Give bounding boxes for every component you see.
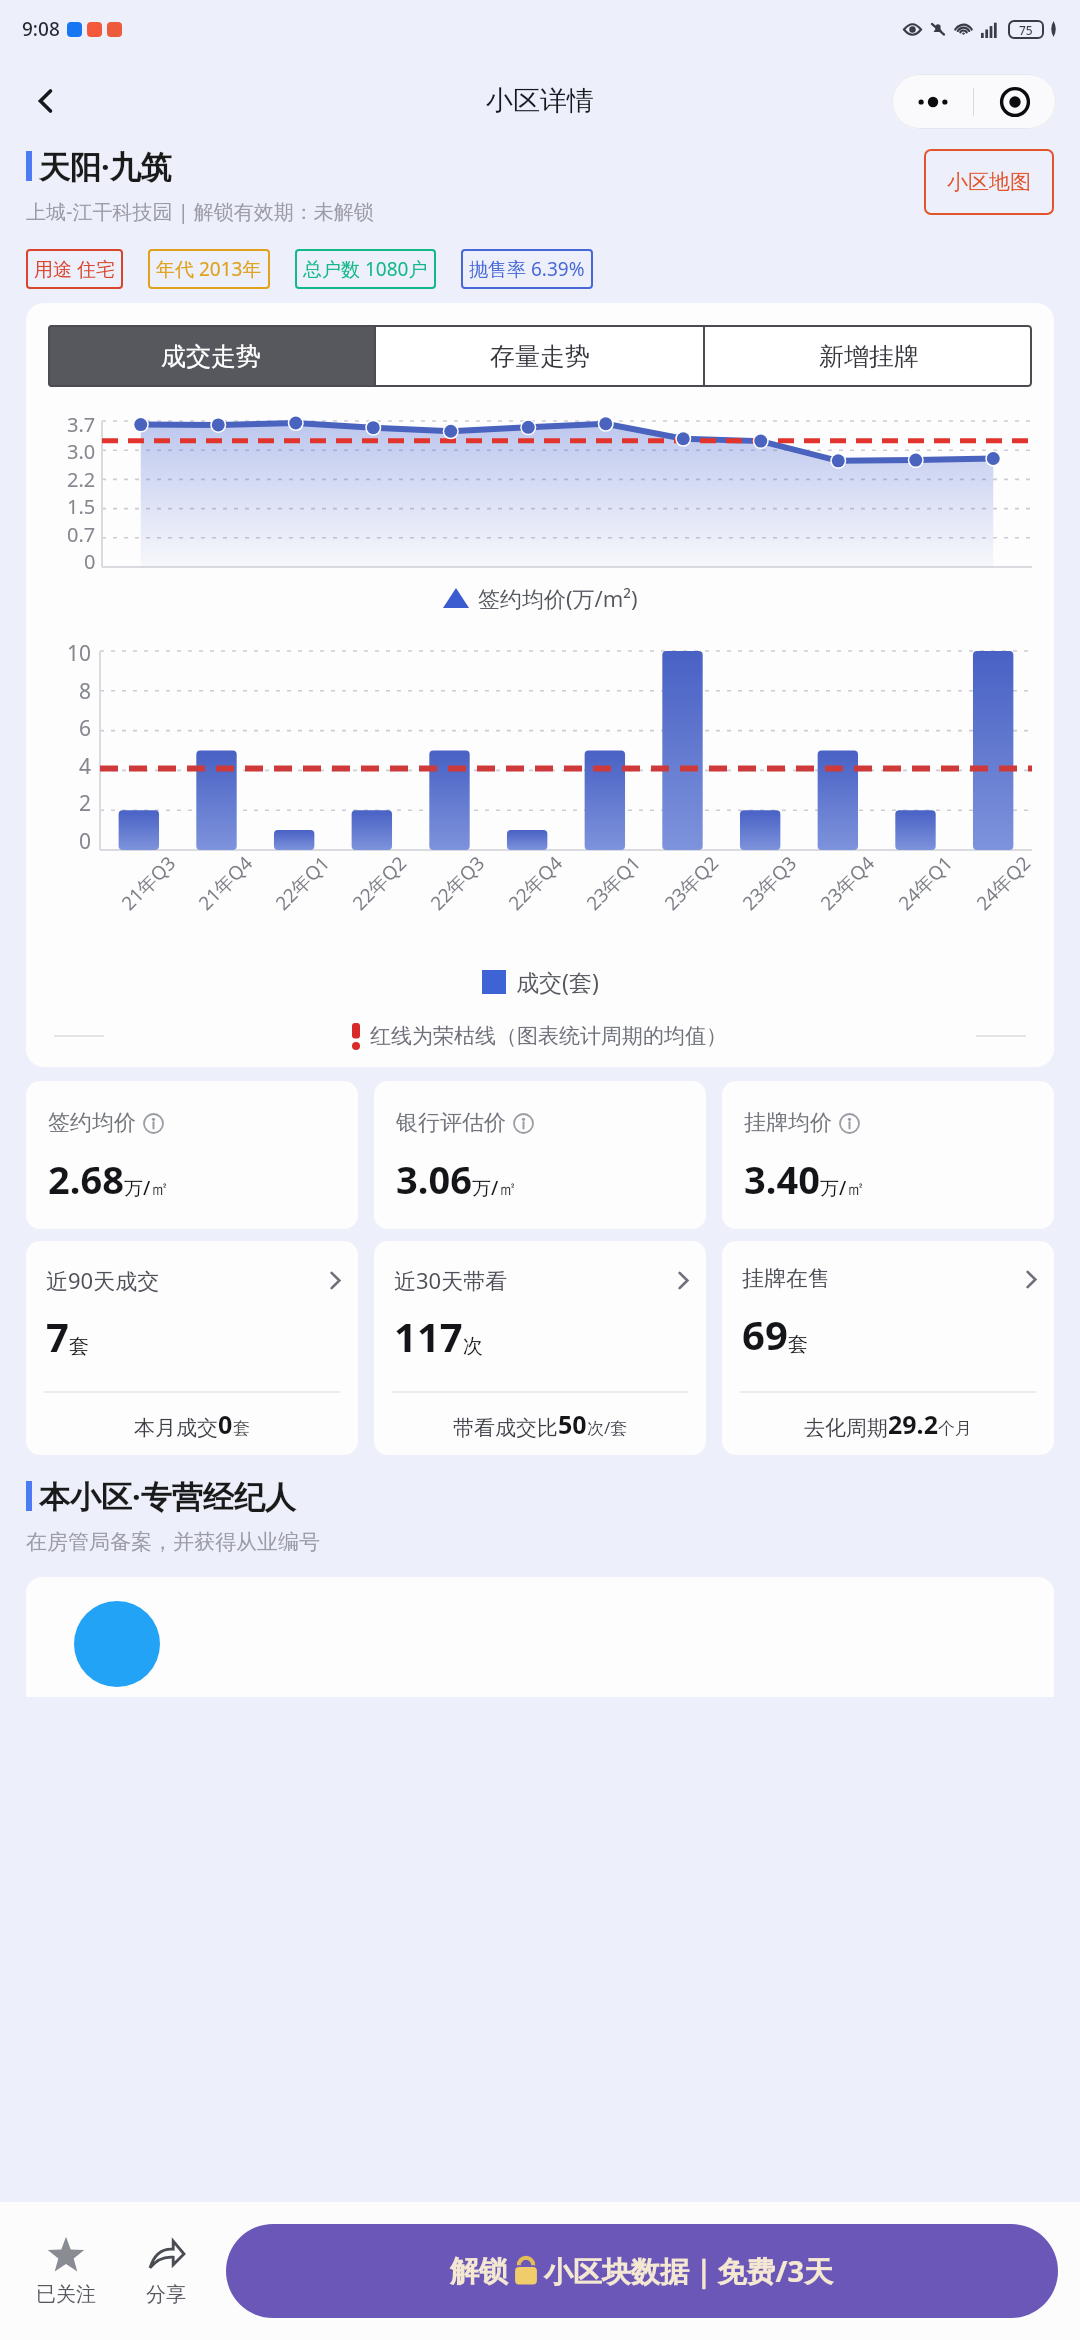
button[interactable]: 近30天带看 (374, 1241, 706, 1455)
staticText: 1.5 (67, 493, 96, 520)
staticText: 签约均价(万/m²) (478, 583, 638, 613)
staticText: 50 (558, 1407, 587, 1441)
button[interactable]: 小区地图 (924, 149, 1054, 215)
staticText: 银行评估价 (396, 1109, 506, 1137)
staticText: 挂牌在售 (742, 1265, 830, 1293)
button[interactable]: 用途 住宅 (34, 249, 115, 289)
staticText: 75 (1019, 22, 1033, 38)
staticText: 0.7 (67, 521, 96, 548)
button[interactable]: 新增挂牌 (705, 325, 1032, 387)
staticText: 9:08 (22, 16, 60, 42)
staticText: 总户数 1080户 (303, 256, 428, 282)
staticText: 去化周期 (804, 1415, 888, 1441)
staticText: 解锁 (450, 2253, 508, 2290)
staticText: 6 (79, 714, 92, 743)
button[interactable]: 抛售率 6.39% (469, 249, 585, 289)
staticText: 次/套 (587, 1416, 628, 1439)
staticText: 3.06 (396, 1153, 472, 1205)
staticText: 23年Q3 (736, 850, 802, 916)
staticText: 上城-江干科技园 | 解锁有效期：未解锁 (26, 198, 374, 225)
staticText: 套 (69, 1334, 89, 1359)
staticText: 分享 (146, 2282, 186, 2307)
staticText: 成交(套) (516, 966, 599, 997)
staticText: 个月 (938, 1418, 972, 1439)
staticText: 0 (84, 548, 96, 575)
staticText: 3.0 (67, 438, 96, 465)
staticText: 22年Q1 (269, 850, 335, 916)
button[interactable]: Close (974, 74, 1056, 129)
staticText: 在房管局备案，并获得从业编号 (26, 1529, 320, 1555)
button[interactable]: 银行评估价 (374, 1081, 706, 1229)
staticText: 抛售率 6.39% (469, 256, 585, 282)
staticText: 年代 2013年 (156, 256, 262, 282)
staticText: 用途 住宅 (34, 256, 115, 282)
button[interactable]: 挂牌在售 (722, 1241, 1054, 1455)
staticText: 小区块数据｜免费/3天 (544, 2251, 834, 2291)
button[interactable]: 成交走势 (48, 325, 374, 387)
staticText: 24年Q2 (970, 850, 1036, 916)
staticText: 万/㎡ (124, 1175, 170, 1201)
staticText: 23年Q1 (580, 850, 646, 916)
staticText: 已关注 (36, 2282, 96, 2307)
staticText: 22年Q4 (502, 850, 568, 916)
staticText: 10 (67, 639, 92, 668)
button[interactable]: 年代 2013年 (156, 249, 262, 289)
staticText: 小区地图 (947, 169, 1031, 195)
button[interactable]: 近90天成交 (26, 1241, 358, 1455)
staticText: 21年Q3 (115, 850, 181, 916)
staticText: 24年Q1 (892, 850, 958, 916)
staticText: 69 (742, 1307, 788, 1361)
staticText: 21年Q4 (192, 850, 258, 916)
staticText: 本月成交 (134, 1415, 218, 1441)
staticText: 近90天成交 (46, 1265, 160, 1295)
button[interactable]: 解锁 (226, 2224, 1058, 2318)
button[interactable]: 已关注 (16, 2202, 116, 2340)
staticText: 万/㎡ (820, 1175, 866, 1201)
staticText: 3.7 (67, 411, 96, 438)
staticText: 7 (46, 1309, 69, 1363)
staticText: 22年Q3 (424, 850, 490, 916)
staticText: 0 (218, 1407, 233, 1441)
staticText: 套 (233, 1418, 250, 1439)
staticText: 新增挂牌 (819, 341, 919, 372)
staticText: 本小区·专营经纪人 (39, 1475, 296, 1517)
button[interactable]: Back (18, 73, 74, 129)
staticText: 0 (79, 827, 92, 856)
staticText: 2 (79, 789, 92, 818)
staticText: 天阳·九筑 (39, 145, 172, 187)
staticText: 小区详情 (486, 84, 594, 118)
staticText: 挂牌均价 (744, 1109, 832, 1137)
staticText: 23年Q2 (658, 850, 724, 916)
staticText: 29.2 (888, 1407, 938, 1441)
staticText: 2.2 (67, 466, 96, 493)
staticText: 套 (788, 1332, 808, 1357)
staticText: 近30天带看 (394, 1265, 508, 1295)
staticText: 成交走势 (161, 341, 261, 372)
staticText: 22年Q2 (346, 850, 412, 916)
button[interactable]: 分享 (116, 2202, 216, 2340)
staticText: 8 (79, 677, 92, 706)
staticText: 23年Q4 (814, 850, 880, 916)
staticText: 签约均价 (48, 1109, 136, 1137)
staticText: 3.40 (744, 1153, 820, 1205)
button[interactable]: 总户数 1080户 (303, 249, 428, 289)
staticText: 带看成交比 (453, 1415, 558, 1441)
staticText: 次 (463, 1334, 483, 1359)
staticText: 红线为荣枯线（图表统计周期的均值） (370, 1023, 727, 1049)
staticText: 万/㎡ (472, 1175, 518, 1201)
staticText: 存量走势 (490, 341, 590, 372)
button[interactable]: More options (892, 74, 973, 129)
staticText: 117 (394, 1309, 463, 1363)
staticText: 4 (79, 752, 92, 781)
button[interactable]: 挂牌均价 (722, 1081, 1054, 1229)
staticText: 2.68 (48, 1153, 124, 1205)
button[interactable]: 存量走势 (376, 325, 703, 387)
button[interactable]: 签约均价 (26, 1081, 358, 1229)
